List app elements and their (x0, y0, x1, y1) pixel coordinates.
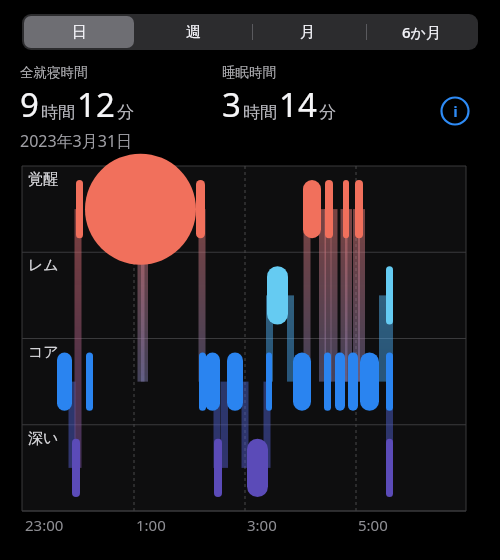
staticText: 覚醒 (28, 170, 58, 189)
staticText: 2023年3月31日 (20, 130, 133, 152)
staticText: 6か月 (402, 22, 441, 42)
staticText: i (453, 101, 458, 121)
button[interactable]: 月 (252, 16, 362, 48)
staticText: レム (28, 256, 59, 275)
staticText: 分 (117, 102, 134, 123)
staticText: 月 (300, 23, 315, 42)
button[interactable]: 週 (138, 16, 248, 48)
staticText: 23:00 (25, 515, 64, 535)
staticText: 時間 (243, 102, 277, 123)
staticText: 14 (279, 82, 317, 127)
staticText: 3:00 (247, 515, 277, 535)
staticText: 12 (77, 82, 115, 127)
staticText: 全就寝時間 (20, 64, 88, 81)
button[interactable]: 6か月 (366, 16, 476, 48)
button[interactable]: 情報 (440, 96, 470, 126)
staticText: 9 (20, 82, 39, 127)
staticText: 深い (28, 429, 59, 448)
staticText: コア (28, 343, 59, 362)
staticText: 3 (222, 82, 241, 127)
staticText: 週 (186, 23, 201, 42)
staticText: 5:00 (358, 515, 388, 535)
staticText: 時間 (41, 102, 75, 123)
staticText: 1:00 (136, 515, 166, 535)
staticText: 睡眠時間 (222, 64, 276, 81)
staticText: 日 (72, 23, 87, 42)
staticText: 分 (319, 102, 336, 123)
button[interactable]: 日 (24, 16, 134, 48)
